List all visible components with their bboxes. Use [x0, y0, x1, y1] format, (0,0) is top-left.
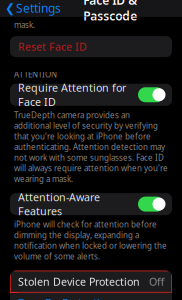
staticText: TrueDepth camera provides an additional … — [14, 110, 168, 184]
staticText: ATTENTION — [14, 69, 57, 80]
staticText: Require Attention for Face ID — [18, 81, 126, 109]
staticText: ❮ — [5, 1, 15, 15]
staticText: Face ID & Passcode — [83, 0, 137, 24]
button[interactable]: Reset Face ID — [10, 36, 172, 57]
button[interactable]: Stolen Device Protection — [10, 271, 172, 293]
staticText: Off — [149, 274, 164, 289]
staticText: Turn On Protection — [18, 295, 113, 300]
staticText: Stolen Device Protection — [18, 274, 140, 289]
button[interactable]: Turn On Protection — [10, 293, 172, 300]
staticText: iPhone will check for attention before d… — [14, 219, 167, 262]
staticText: mask. — [14, 19, 35, 30]
button[interactable]: Require Attention for Face ID — [10, 84, 172, 106]
button[interactable]: Attention-Aware Features — [10, 193, 172, 215]
staticText: Attention-Aware Features — [18, 190, 100, 218]
button[interactable]: ❮ — [0, 0, 61, 19]
staticText: Settings — [16, 0, 61, 16]
staticText: Reset Face ID — [18, 39, 87, 54]
